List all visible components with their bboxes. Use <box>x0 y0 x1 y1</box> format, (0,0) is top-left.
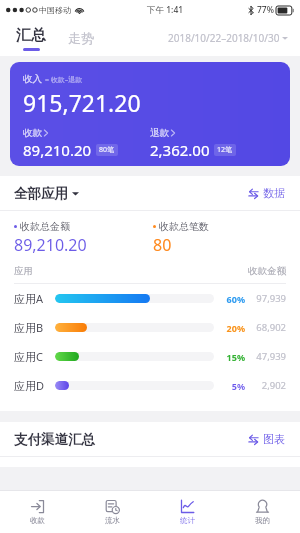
staticText: 60% <box>221 293 245 305</box>
staticText: 应用 <box>14 265 33 277</box>
staticText: 47,939 <box>250 350 286 363</box>
button[interactable]: 我的 <box>225 491 300 533</box>
button[interactable]: 收款总笔数 <box>153 220 286 256</box>
staticText: 97,939 <box>250 292 286 305</box>
button[interactable]: 收款 <box>23 127 150 160</box>
button[interactable]: 图表 <box>246 428 287 450</box>
staticText: 12笔 <box>217 145 233 155</box>
staticText: 20% <box>221 322 245 334</box>
staticText: 数据 <box>263 186 285 200</box>
button[interactable]: 应用C <box>0 342 300 371</box>
staticText: 5% <box>221 380 245 392</box>
button[interactable]: 退款 <box>150 127 278 160</box>
staticText: 退款 <box>150 127 169 139</box>
staticText: 915,721.20 <box>23 87 141 118</box>
staticText: 77% <box>257 4 274 16</box>
staticText: 2,902 <box>250 379 286 392</box>
button[interactable]: 收款总金额 <box>14 220 153 256</box>
staticText: 68,902 <box>250 321 286 334</box>
staticText: 我的 <box>255 516 270 525</box>
staticText: 走势 <box>68 30 94 46</box>
staticText: 中国移动 <box>39 5 71 15</box>
staticText: 2,362.00 <box>150 140 210 160</box>
button[interactable]: 统计 <box>150 491 225 533</box>
staticText: 89,210.20 <box>23 140 92 160</box>
staticText: 应用A <box>14 291 51 306</box>
staticText: = 收款–退款 <box>45 75 83 85</box>
staticText: 统计 <box>180 516 195 525</box>
staticText: 应用C <box>14 349 51 364</box>
button[interactable]: 收入 <box>10 62 290 166</box>
staticText: 收款总金额 <box>20 220 70 233</box>
staticText: 全部应用 <box>14 185 68 202</box>
button[interactable]: 走势 <box>66 26 96 50</box>
button[interactable]: 收款 <box>0 491 75 533</box>
button[interactable]: 应用B <box>0 313 300 342</box>
button[interactable]: 支付渠道汇总 <box>0 422 300 456</box>
staticText: 80 <box>153 234 172 256</box>
staticText: 流水 <box>105 516 120 525</box>
other: 数据 <box>248 188 259 199</box>
staticText: 收款 <box>23 127 42 139</box>
staticText: 15% <box>221 351 245 363</box>
staticText: 汇总 <box>16 26 46 45</box>
staticText: 收款 <box>30 516 45 525</box>
button[interactable]: 应用D <box>0 371 300 400</box>
staticText: 2018/10/22–2018/10/30 <box>168 31 280 45</box>
button[interactable]: 汇总 <box>14 26 48 51</box>
staticText: 收款金额 <box>248 265 286 277</box>
staticText: 89,210.20 <box>14 234 87 256</box>
button[interactable]: 流水 <box>75 491 150 533</box>
staticText: 收款总笔数 <box>159 220 209 233</box>
staticText: 支付渠道汇总 <box>14 431 95 448</box>
button[interactable]: 应用A <box>0 284 300 313</box>
other: 图表 <box>248 434 259 445</box>
staticText: 图表 <box>263 432 285 446</box>
button[interactable]: 全部应用 <box>0 176 300 210</box>
staticText: 下午 1:41 <box>147 4 184 16</box>
staticText: 应用D <box>14 378 51 393</box>
button[interactable]: 2018/10/22–2018/10/30 <box>168 27 288 49</box>
button[interactable]: 数据 <box>246 182 287 204</box>
staticText: 应用B <box>14 320 51 335</box>
staticText: 收入 <box>23 73 42 85</box>
staticText: 80笔 <box>99 145 115 155</box>
